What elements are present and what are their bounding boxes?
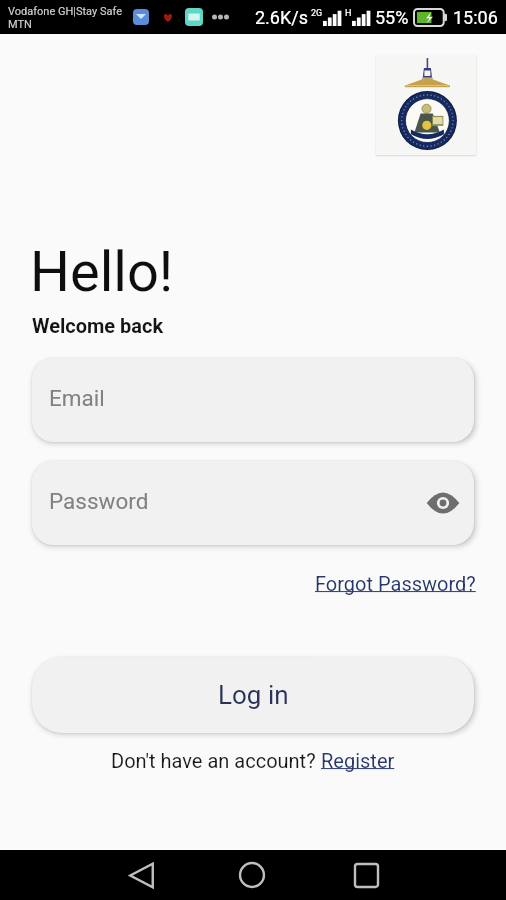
- staticText: MTN: [8, 18, 32, 31]
- button[interactable]: Email: [32, 358, 474, 442]
- staticText: Forgot Password?: [315, 572, 476, 595]
- staticText: 2G: [311, 8, 323, 19]
- staticText: Don't have an account?: [111, 749, 321, 772]
- staticText: Hello!: [30, 239, 174, 305]
- staticText: Log in: [218, 680, 289, 710]
- button[interactable]: Home: [227, 850, 277, 900]
- staticText: Register: [321, 749, 395, 772]
- staticText: H: [345, 8, 352, 19]
- staticText: Welcome back: [32, 314, 164, 337]
- staticText: 55%: [375, 7, 409, 28]
- button[interactable]: Recents: [341, 850, 391, 900]
- button[interactable]: Forgot Password?: [315, 572, 476, 595]
- button[interactable]: Back: [116, 850, 166, 900]
- staticText: Vodafone GH|Stay Safe: [8, 5, 122, 18]
- staticText: Password: [49, 488, 149, 514]
- staticText: 15:06: [453, 7, 498, 28]
- button[interactable]: Show password: [422, 482, 464, 524]
- button[interactable]: Password: [32, 461, 474, 545]
- staticText: Email: [49, 385, 105, 411]
- button[interactable]: Register: [321, 749, 395, 772]
- staticText: 2.6K/s: [255, 7, 308, 28]
- button[interactable]: Log in: [32, 657, 474, 733]
